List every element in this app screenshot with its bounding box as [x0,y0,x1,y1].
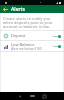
staticText: Low Balance [11,42,35,47]
staticText: Alerts [11,6,25,13]
button[interactable]: Back [16,92,24,100]
staticText: Alert me below $100 [11,47,42,51]
button[interactable]: Recent apps [40,92,48,100]
button[interactable]: Back [0,5,11,13]
staticText: Create alerts to notify you when deposit… [3,16,61,29]
staticText: Deposit [11,33,26,38]
button[interactable]: Deposit [0,31,64,40]
button[interactable]: Home [28,92,36,100]
button[interactable]: Low Balance [0,41,64,51]
